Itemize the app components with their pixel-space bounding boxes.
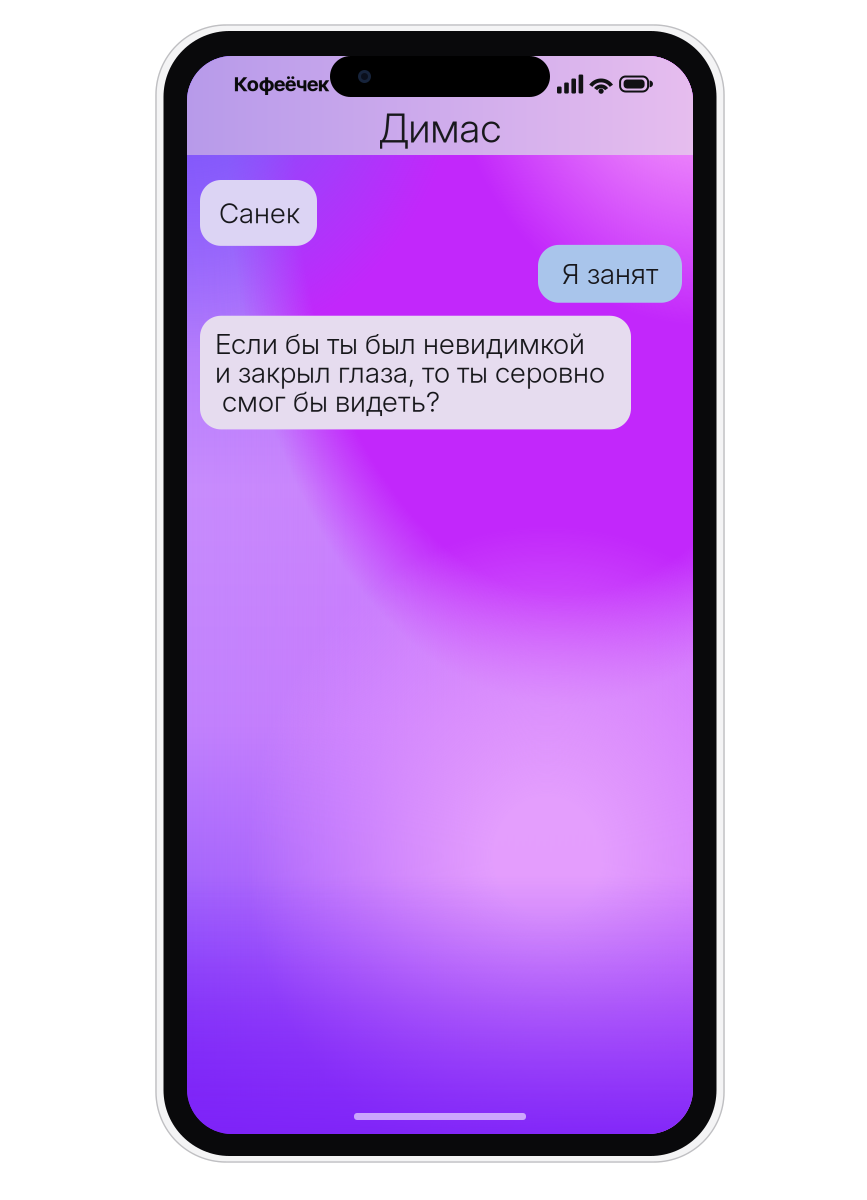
staticText: Кофеёчек [234,72,329,96]
staticText: Я занят [562,257,658,291]
button[interactable]: Если бы ты был невидимкой и закрыл глаза… [200,316,631,429]
staticText: Санек [219,196,300,230]
staticText: Димас [378,104,501,152]
button[interactable]: Санек [200,180,317,246]
staticText: Если бы ты был невидимкой и закрыл глаза… [215,327,605,418]
button[interactable]: Я занят [538,245,682,303]
